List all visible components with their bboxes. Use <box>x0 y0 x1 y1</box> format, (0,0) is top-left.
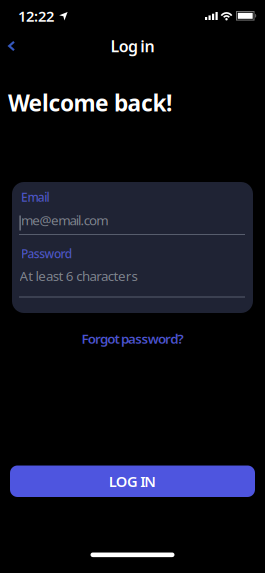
staticText: Log in <box>110 35 154 57</box>
staticText: Welcome back! <box>8 88 172 118</box>
button[interactable] <box>0 33 16 59</box>
button[interactable]: me@email.com <box>12 182 99 200</box>
button[interactable]: At least 6 characters <box>12 182 130 200</box>
staticText: Email <box>21 189 50 205</box>
staticText: LOG IN <box>109 471 156 491</box>
staticText: Forgot password? <box>81 330 183 347</box>
button[interactable]: LOG IN <box>0 465 265 497</box>
staticText: Password <box>21 246 72 261</box>
button[interactable]: Forgot password? <box>81 332 183 345</box>
staticText: me@email.com <box>21 211 108 229</box>
staticText: At least 6 characters <box>19 267 137 285</box>
staticText: 12:22 <box>18 6 54 26</box>
